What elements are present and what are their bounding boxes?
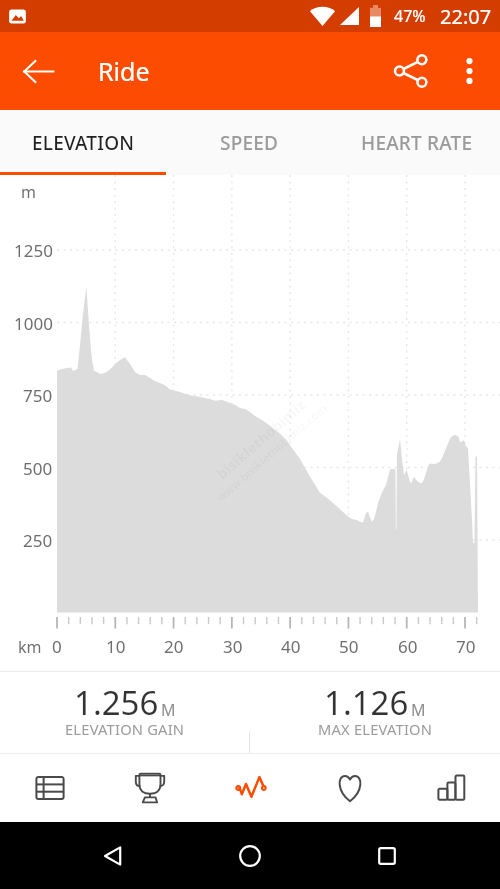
button[interactable]: Stats <box>400 753 500 822</box>
staticText: M <box>411 699 426 721</box>
staticText: 250 <box>23 529 53 552</box>
staticText: 70 <box>456 635 476 658</box>
button[interactable]: SPEED <box>166 110 333 175</box>
staticText: 30 <box>223 635 243 658</box>
staticText: 0 <box>52 635 62 658</box>
button[interactable]: ELEVATION <box>0 110 166 175</box>
staticText: HEART RATE <box>361 130 473 156</box>
button[interactable]: 1.256 <box>0 671 249 753</box>
button[interactable]: Feed <box>0 753 100 822</box>
staticText: bisiklethobimiz <box>212 395 309 483</box>
staticText: M <box>161 699 176 721</box>
staticText: 40 <box>281 635 301 658</box>
staticText: ELEVATION <box>32 130 135 156</box>
staticText: Ride <box>98 54 150 88</box>
staticText: 10 <box>106 635 126 658</box>
button[interactable]: HEART RATE <box>333 110 500 175</box>
staticText: 1.256 <box>74 680 159 725</box>
button[interactable]: Groups <box>300 753 400 822</box>
button[interactable]: Back <box>8 41 68 101</box>
button[interactable]: Back <box>89 832 137 880</box>
staticText: m <box>21 181 36 203</box>
staticText: ELEVATION GAIN <box>65 719 185 739</box>
staticText: 1.126 <box>324 680 409 725</box>
staticText: SPEED <box>220 130 279 156</box>
staticText: 1250 <box>14 239 53 262</box>
button[interactable]: Activity <box>200 753 300 822</box>
staticText: MAX ELEVATION <box>318 719 433 739</box>
staticText: 750 <box>23 384 53 407</box>
staticText: 22:07 <box>440 3 492 30</box>
button[interactable]: Home <box>226 832 274 880</box>
staticText: 60 <box>398 635 418 658</box>
button[interactable]: Share <box>383 43 439 99</box>
button[interactable]: More options <box>445 47 493 95</box>
staticText: km <box>18 636 42 658</box>
staticText: 47% <box>394 5 426 27</box>
staticText: 500 <box>23 457 53 480</box>
staticText: 50 <box>339 635 359 658</box>
staticText: 1000 <box>14 312 53 335</box>
button[interactable]: Challenges <box>100 753 200 822</box>
button[interactable]: 1.126 <box>250 671 500 753</box>
button[interactable]: Recents <box>363 832 411 880</box>
staticText: www.bisiklethobimiz.com <box>214 400 330 504</box>
staticText: 20 <box>164 635 184 658</box>
